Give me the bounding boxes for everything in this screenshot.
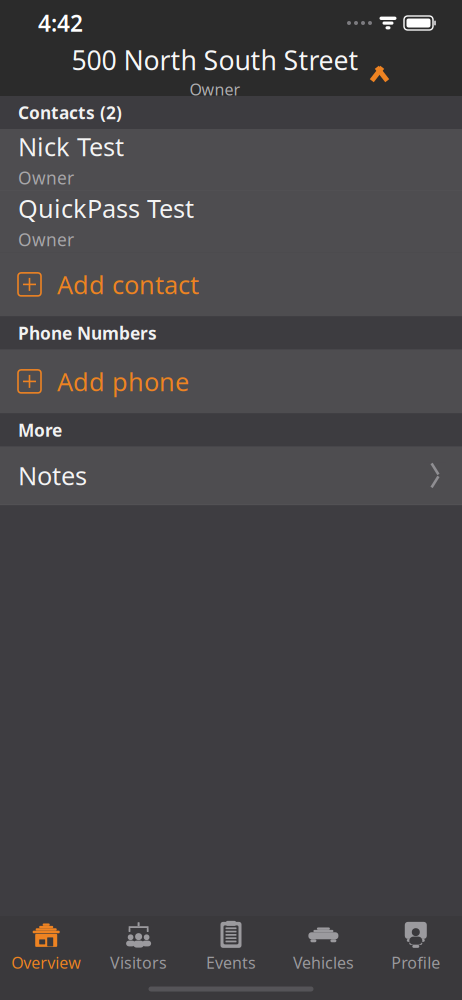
- button[interactable]: Add phone: [0, 349, 462, 413]
- button[interactable]: Profile: [370, 916, 462, 978]
- staticText: Add contact: [57, 268, 199, 301]
- button[interactable]: Notes: [0, 446, 462, 504]
- button[interactable]: Overview: [0, 916, 92, 978]
- staticText: Notes: [18, 459, 87, 492]
- staticText: 500 North South Street: [71, 42, 358, 78]
- button[interactable]: QuickPass Test: [0, 191, 462, 252]
- button[interactable]: Nick Test: [0, 129, 462, 190]
- staticText: Overview: [11, 952, 81, 973]
- staticText: Owner: [18, 166, 74, 189]
- button[interactable]: Add contact: [0, 252, 462, 316]
- staticText: Visitors: [110, 952, 167, 973]
- button[interactable]: 500 North South Street: [0, 46, 462, 96]
- button[interactable]: Vehicles: [277, 916, 370, 978]
- staticText: Owner: [189, 79, 240, 100]
- staticText: More: [18, 418, 62, 441]
- button[interactable]: Events: [185, 916, 277, 978]
- staticText: Profile: [391, 952, 440, 973]
- staticText: 4:42: [38, 8, 83, 38]
- staticText: Phone Numbers: [18, 321, 157, 344]
- staticText: Vehicles: [293, 952, 354, 973]
- staticText: Add phone: [57, 365, 189, 398]
- staticText: QuickPass Test: [18, 191, 194, 225]
- button[interactable]: Visitors: [92, 916, 185, 978]
- staticText: Owner: [18, 228, 74, 251]
- staticText: Nick Test: [18, 130, 124, 163]
- staticText: Events: [206, 952, 256, 973]
- staticText: Contacts (2): [18, 101, 122, 124]
